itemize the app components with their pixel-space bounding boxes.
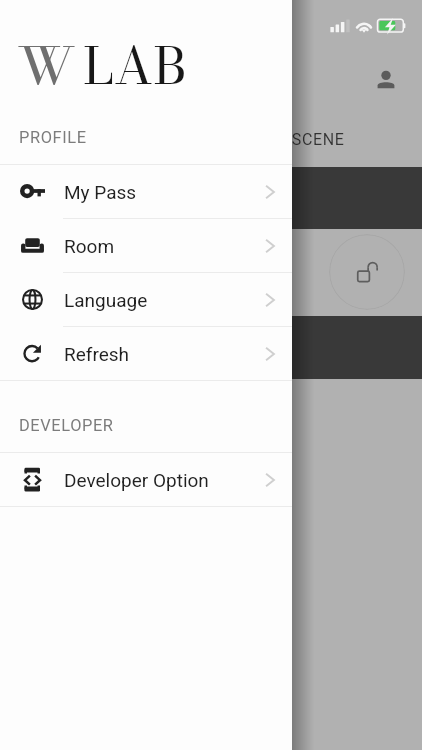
button[interactable]: Room <box>0 219 292 272</box>
button[interactable]: Profile <box>366 60 406 100</box>
staticText: LAB <box>83 27 187 105</box>
button[interactable]: Unlock <box>329 234 405 310</box>
staticText: Room <box>64 235 115 257</box>
staticText: W <box>17 27 77 105</box>
staticText: DEVELOPER <box>19 416 114 435</box>
staticText: PRESENT SCENE <box>215 130 345 149</box>
button[interactable]: Language <box>0 273 292 326</box>
button[interactable]: Developer Option <box>0 453 292 506</box>
staticText: Developer Option <box>64 469 209 491</box>
staticText: PROFILE <box>19 128 87 147</box>
staticText: My Pass <box>64 181 137 203</box>
button[interactable]: My Pass <box>0 165 292 218</box>
staticText: Language <box>64 289 148 311</box>
button[interactable]: Refresh <box>0 327 292 380</box>
staticText: Refresh <box>64 343 129 365</box>
